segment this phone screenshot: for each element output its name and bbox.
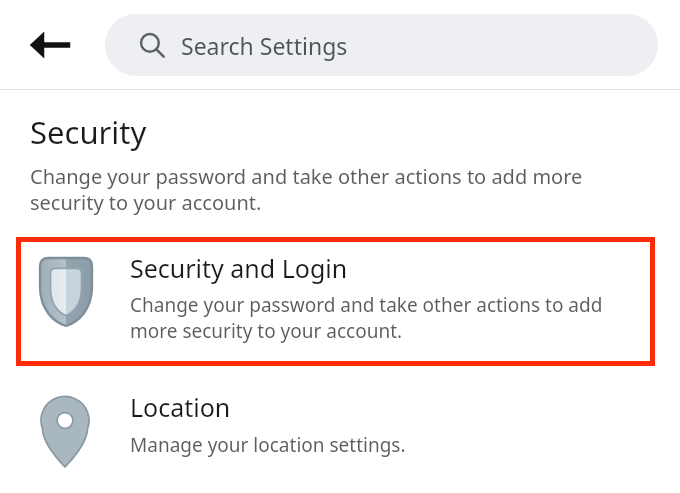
- staticText: Security and Login: [130, 251, 348, 285]
- button[interactable]: Security and Login: [16, 237, 655, 366]
- button[interactable]: Back: [18, 13, 82, 77]
- staticText: Search Settings: [181, 30, 348, 61]
- staticText: Manage your location settings.: [130, 432, 406, 458]
- staticText: Change your password and take other acti…: [30, 163, 624, 216]
- button[interactable]: Search Settings: [105, 14, 658, 76]
- staticText: Security: [30, 111, 147, 153]
- staticText: Change your password and take other acti…: [130, 292, 645, 343]
- button[interactable]: Location: [0, 388, 680, 488]
- staticText: Location: [130, 390, 231, 424]
